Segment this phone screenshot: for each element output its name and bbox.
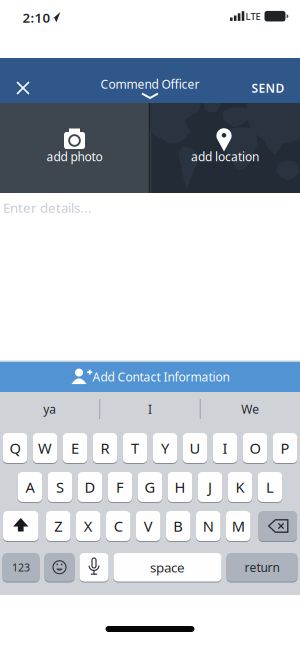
button[interactable]: Commend Officer bbox=[90, 73, 210, 103]
button[interactable]: I bbox=[100, 393, 200, 425]
staticText: LTE bbox=[245, 10, 260, 23]
button[interactable]: SEND bbox=[240, 73, 296, 103]
staticText: Y bbox=[161, 438, 169, 458]
staticText: A bbox=[25, 477, 34, 497]
staticText: P bbox=[280, 438, 289, 458]
staticText: J bbox=[208, 477, 212, 497]
staticText: ya bbox=[43, 401, 56, 417]
button[interactable]: I bbox=[213, 432, 237, 463]
staticText: H bbox=[174, 477, 185, 497]
button[interactable]: A bbox=[18, 471, 42, 502]
button[interactable]: N bbox=[196, 510, 220, 541]
staticText: K bbox=[235, 477, 244, 497]
staticText: U bbox=[189, 438, 200, 458]
staticText: Add Contact Information bbox=[92, 369, 229, 385]
staticText: add photo bbox=[46, 148, 102, 164]
staticText: return bbox=[244, 559, 279, 575]
staticText: I bbox=[222, 438, 227, 458]
button[interactable]: X bbox=[76, 510, 100, 541]
staticText: S bbox=[56, 477, 64, 497]
button[interactable]: K bbox=[228, 471, 252, 502]
staticText: 123 bbox=[12, 560, 30, 574]
button[interactable] bbox=[7, 72, 39, 104]
button[interactable]: C bbox=[106, 510, 130, 541]
button[interactable]: space bbox=[113, 552, 221, 582]
button[interactable]: G bbox=[138, 471, 162, 502]
staticText: O bbox=[249, 438, 260, 458]
staticText: N bbox=[203, 516, 214, 536]
staticText: M bbox=[232, 516, 245, 536]
button[interactable]: Y bbox=[153, 432, 177, 463]
staticText: B bbox=[173, 516, 183, 536]
staticText: C bbox=[114, 516, 123, 536]
button[interactable]: L bbox=[258, 471, 282, 502]
staticText: Q bbox=[9, 438, 20, 458]
button[interactable]: D bbox=[78, 471, 102, 502]
button[interactable]: Add Contact Information bbox=[0, 362, 300, 392]
staticText: X bbox=[84, 516, 93, 536]
button[interactable]: J bbox=[198, 471, 222, 502]
button[interactable]: R bbox=[93, 432, 117, 463]
button[interactable]: U bbox=[183, 432, 207, 463]
staticText: space bbox=[150, 558, 185, 576]
staticText: Z bbox=[54, 516, 62, 536]
button[interactable]: Q bbox=[3, 432, 27, 463]
button[interactable] bbox=[3, 510, 38, 541]
staticText: E bbox=[71, 438, 79, 458]
staticText: L bbox=[266, 477, 274, 497]
staticText: We bbox=[241, 401, 259, 417]
staticText: 2:10 bbox=[22, 9, 50, 26]
staticText: D bbox=[84, 477, 95, 497]
staticText: Commend Officer bbox=[100, 76, 199, 92]
button[interactable]: B bbox=[166, 510, 190, 541]
button[interactable]: S bbox=[48, 471, 72, 502]
button[interactable]: return bbox=[226, 552, 297, 582]
button[interactable]: W bbox=[33, 432, 57, 463]
button[interactable] bbox=[79, 552, 108, 582]
button[interactable] bbox=[44, 552, 74, 582]
staticText: add location bbox=[191, 148, 259, 164]
staticText: G bbox=[144, 477, 155, 497]
button[interactable]: add location bbox=[150, 103, 300, 193]
button[interactable]: V bbox=[136, 510, 160, 541]
button[interactable]: add photo bbox=[0, 103, 149, 193]
button[interactable]: M bbox=[226, 510, 250, 541]
staticText: V bbox=[144, 516, 153, 536]
button[interactable] bbox=[258, 510, 297, 541]
button[interactable]: ya bbox=[0, 393, 99, 425]
button[interactable]: H bbox=[168, 471, 192, 502]
button[interactable]: 123 bbox=[2, 552, 39, 582]
staticText: R bbox=[100, 438, 109, 458]
staticText: SEND bbox=[251, 80, 284, 96]
staticText: F bbox=[116, 477, 124, 497]
button[interactable]: T bbox=[123, 432, 147, 463]
staticText: T bbox=[131, 438, 139, 458]
button[interactable]: P bbox=[273, 432, 297, 463]
button[interactable]: We bbox=[201, 393, 300, 425]
button[interactable]: F bbox=[108, 471, 132, 502]
staticText: I bbox=[148, 401, 152, 417]
staticText: W bbox=[38, 438, 52, 458]
button[interactable]: O bbox=[243, 432, 267, 463]
button[interactable]: Z bbox=[46, 510, 70, 541]
button[interactable]: E bbox=[63, 432, 87, 463]
staticText: Enter details... bbox=[3, 199, 92, 216]
